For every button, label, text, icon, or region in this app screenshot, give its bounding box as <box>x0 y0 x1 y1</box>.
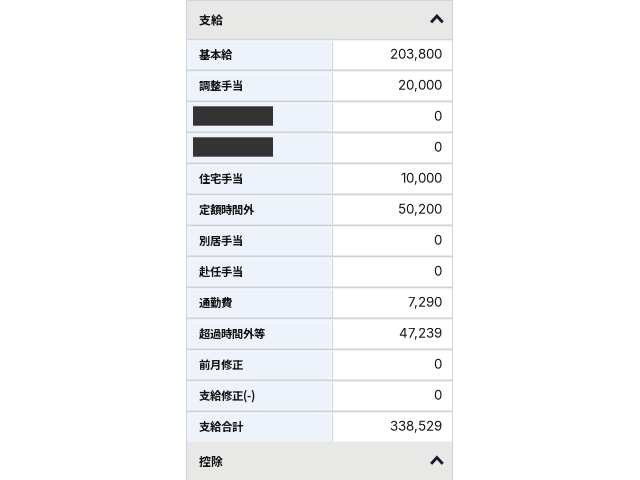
staticText: 47,239 <box>399 325 442 341</box>
staticText: 0 <box>434 387 442 403</box>
staticText: 7,290 <box>408 294 442 310</box>
staticText: 支給修正(-) <box>199 387 255 403</box>
staticText: 20,000 <box>398 77 442 93</box>
button[interactable]: 支給 <box>186 0 453 38</box>
staticText: 住宅手当 <box>199 170 243 186</box>
staticText: 基本給 <box>199 46 232 62</box>
staticText: 10,000 <box>401 170 442 186</box>
staticText: 通勤費 <box>199 294 232 310</box>
staticText: 控除 <box>199 452 223 469</box>
staticText: 赴任手当 <box>199 263 243 279</box>
button[interactable]: 控除 <box>186 441 453 480</box>
staticText: 50,200 <box>398 201 442 217</box>
staticText: 超過時間外等 <box>199 325 265 341</box>
staticText: 0 <box>434 356 442 372</box>
staticText: 定額時間外 <box>199 201 254 217</box>
staticText: 調整手当 <box>199 77 243 93</box>
staticText: 0 <box>434 139 442 155</box>
staticText: 支給 <box>199 11 223 28</box>
staticText: 0 <box>434 108 442 124</box>
staticText: 338,529 <box>390 418 442 434</box>
staticText: 0 <box>434 263 442 279</box>
staticText: 0 <box>434 232 442 248</box>
staticText: 別居手当 <box>199 232 243 248</box>
staticText: 前月修正 <box>199 356 243 372</box>
staticText: 203,800 <box>390 46 442 62</box>
staticText: 支給合計 <box>199 418 243 434</box>
